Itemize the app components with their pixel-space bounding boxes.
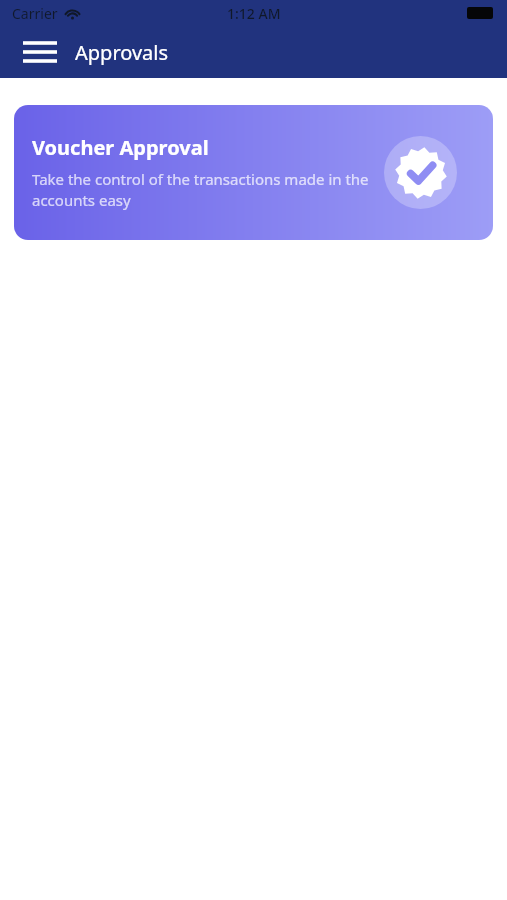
staticText: Take the control of the transactions mad… bbox=[32, 169, 373, 211]
staticText: Approvals bbox=[75, 39, 169, 66]
button[interactable]: Open navigation menu bbox=[22, 34, 58, 70]
staticText: 1:12 AM bbox=[227, 4, 281, 23]
staticText: Voucher Approval bbox=[32, 134, 209, 161]
button[interactable]: Voucher Approval bbox=[14, 105, 493, 240]
staticText: Carrier bbox=[12, 4, 58, 23]
